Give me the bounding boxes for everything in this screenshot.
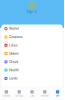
button[interactable]: Cart: [26, 87, 38, 100]
button[interactable]: Wallet: [1, 24, 63, 33]
staticText: Likes: [9, 43, 18, 47]
button[interactable]: Likes: [1, 41, 63, 49]
staticText: Sign in: [26, 10, 37, 13]
staticText: Me: [56, 94, 60, 97]
button[interactable]: News: [38, 87, 51, 100]
staticText: Cart: [29, 94, 34, 97]
staticText: Health: [9, 68, 19, 72]
button[interactable]: Coupons: [1, 33, 63, 41]
button[interactable]: Orders: [1, 49, 63, 58]
staticText: Coupons: [9, 35, 23, 39]
button[interactable]: Cards: [1, 74, 63, 83]
staticText: Home: [2, 94, 10, 97]
button[interactable]: Me: [51, 87, 64, 100]
staticText: Shop: [15, 94, 23, 97]
staticText: Cloud: [9, 60, 18, 64]
button[interactable]: Cloud: [1, 58, 63, 66]
staticText: Wallet: [9, 27, 19, 31]
staticText: Orders: [9, 52, 19, 55]
button[interactable]: Shop: [13, 87, 26, 100]
button[interactable]: Home: [0, 87, 13, 100]
staticText: News: [41, 94, 48, 97]
button[interactable]: Health: [1, 66, 63, 74]
staticText: Cards: [9, 76, 18, 80]
